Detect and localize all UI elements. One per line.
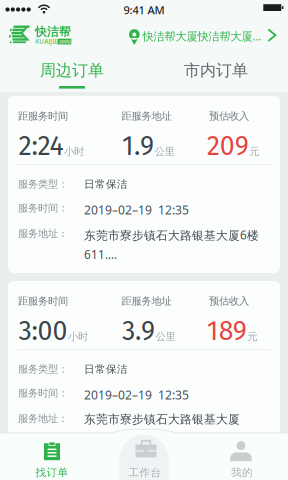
staticText: 元 <box>249 145 259 158</box>
staticText: 预估收入 <box>209 109 249 122</box>
staticText: 小时 <box>64 145 84 158</box>
staticText: 快洁帮大厦快洁帮大厦… <box>142 28 261 44</box>
staticText: 服务类型： <box>18 362 68 375</box>
staticText: 服务时间： <box>18 386 68 399</box>
staticText: 服务时间： <box>18 201 68 214</box>
staticText: KUAIJIE <box>35 37 58 45</box>
staticText: 服务类型： <box>18 177 68 190</box>
staticText: 209 <box>207 130 249 162</box>
staticText: 元 <box>247 330 257 343</box>
staticText: 公里 <box>155 330 175 343</box>
staticText: 周边订单 <box>40 60 104 81</box>
staticText: 2:24 <box>18 130 63 162</box>
staticText: 1.9 <box>122 130 154 162</box>
staticText: 市内订单 <box>184 60 248 81</box>
staticText: 快洁帮 <box>35 24 71 39</box>
staticText: 距服务地址 <box>121 294 171 307</box>
staticText: BANG <box>59 38 73 45</box>
staticText: 3:00 <box>18 315 67 347</box>
staticText: 日常保洁 <box>84 177 128 191</box>
staticText: 公里 <box>154 145 174 158</box>
staticText: 距服务时间 <box>18 109 68 122</box>
staticText: 预估收入 <box>209 294 249 307</box>
staticText: 东莞市寮步镇石大路银基大厦 <box>84 412 240 427</box>
staticText: 小时 <box>68 330 88 343</box>
staticText: 东莞市寮步镇石大路银基大厦6楼 <box>84 227 259 243</box>
staticText: 3.9 <box>122 315 155 347</box>
staticText: 日常保洁 <box>84 362 128 376</box>
staticText: 611.... <box>84 246 117 262</box>
staticText: 服务地址： <box>18 412 68 425</box>
staticText: 9:41 AM <box>123 2 164 18</box>
staticText: 服务地址： <box>18 227 68 240</box>
staticText: 2019–02–19 12:35 <box>84 201 189 218</box>
staticText: 工作台 <box>128 466 161 479</box>
staticText: 189 <box>207 315 247 347</box>
staticText: 找订单 <box>35 466 68 479</box>
staticText: 2019–02–19 12:35 <box>84 386 189 403</box>
staticText: 距服务时间 <box>18 294 68 307</box>
staticText: 我的 <box>231 466 253 479</box>
staticText: 距服务地址 <box>121 109 171 122</box>
